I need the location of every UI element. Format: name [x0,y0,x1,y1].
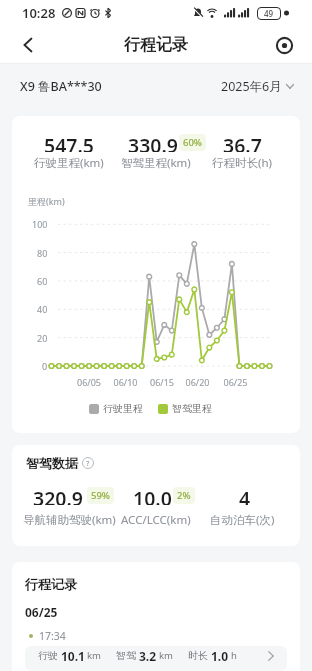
staticText: 智驾 [116,649,136,662]
staticText: 60% [183,136,202,149]
button[interactable]: ? [82,457,94,469]
staticText: 17:34 [39,629,66,643]
staticText: 智驾里程(km) [121,155,191,169]
staticText: 行驶 [38,649,58,662]
staticText: km [87,649,101,662]
staticText: 49 [264,8,274,19]
button[interactable]: X9 鲁BA***30 [20,78,102,95]
staticText: h [231,649,237,662]
staticText: 3.2 [139,648,157,663]
staticText: 行程记录 [124,35,188,55]
staticText: 2025年6月 [221,78,282,95]
staticText: ACC/LCC(km) [121,512,191,526]
staticText: 330.9 [128,132,178,152]
staticText: 行驶里程 [103,402,143,415]
button[interactable]: 2025年6月 [221,78,294,95]
staticText: 时长 [188,649,208,662]
staticText: 320.9 [33,485,83,505]
staticText: 36.7 [223,132,262,152]
staticText: 2% [177,489,191,502]
staticText: 59% [91,489,110,502]
staticText: 智驾数据 [26,455,78,471]
button[interactable] [270,31,298,59]
staticText: X9 鲁BA***30 [20,78,102,95]
button[interactable]: 行驶 [25,646,287,671]
staticText: 智驾里程 [172,402,212,415]
staticText: 自动泊车(次) [210,512,275,526]
staticText: 导航辅助驾驶(km) [23,512,116,526]
staticText: 10.1 [61,648,85,663]
staticText: 547.5 [44,132,94,152]
staticText: km [159,649,173,662]
staticText: 10:28 [22,4,56,22]
staticText: 10.0 [133,485,172,505]
staticText: 1.0 [211,648,229,663]
staticText: 行驶里程(km) [34,155,104,169]
staticText: 行程时长(h) [212,155,273,169]
button[interactable] [12,29,44,61]
staticText: 行程记录 [25,576,77,592]
staticText: 06/25 [25,604,58,620]
staticText: ? [86,458,90,468]
staticText: 4 [239,485,251,505]
